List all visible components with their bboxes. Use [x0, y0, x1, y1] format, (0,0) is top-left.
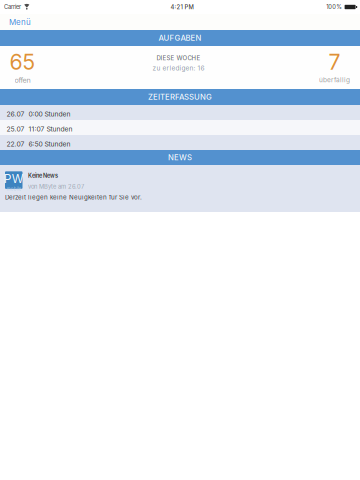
- button[interactable]: 7: [312, 46, 360, 89]
- button[interactable]: Menü: [0, 14, 40, 30]
- staticText: 0:00 Stunden: [28, 110, 70, 118]
- staticText: 11:07 Stunden: [28, 125, 72, 133]
- button[interactable]: 22.07: [0, 135, 360, 150]
- staticText: 100%: [326, 3, 342, 10]
- staticText: Carrier: [4, 3, 21, 10]
- staticText: 65: [9, 49, 35, 75]
- staticText: offen: [14, 76, 30, 84]
- staticText: von MByte am 26.07: [28, 183, 84, 190]
- button[interactable]: 26.07: [0, 105, 360, 120]
- staticText: 7: [328, 49, 340, 75]
- button[interactable]: 25.07: [0, 120, 360, 135]
- staticText: ZEITERFASSUNG: [148, 92, 212, 102]
- staticText: 25.07: [6, 125, 24, 133]
- staticText: Menü: [9, 17, 31, 27]
- staticText: Keine News: [28, 172, 58, 179]
- staticText: NEWS: [168, 153, 192, 162]
- staticText: 6:50 Stunden: [28, 140, 70, 148]
- staticText: überfällig: [319, 76, 350, 84]
- staticText: 22.07: [6, 140, 24, 148]
- button[interactable]: PW: [0, 165, 360, 212]
- staticText: 26.07: [6, 110, 24, 118]
- staticText: AUFGABEN: [158, 33, 201, 43]
- staticText: DIESE WOCHE: [156, 54, 200, 62]
- staticText: Derzeit liegen keine Neuigkeiten für Sie…: [5, 193, 142, 201]
- staticText: zu erledigen: 16: [152, 64, 204, 72]
- staticText: mobile: [7, 186, 21, 191]
- staticText: 4:21 PM: [170, 3, 193, 11]
- staticText: PW: [4, 171, 24, 186]
- button[interactable]: 65: [0, 46, 45, 89]
